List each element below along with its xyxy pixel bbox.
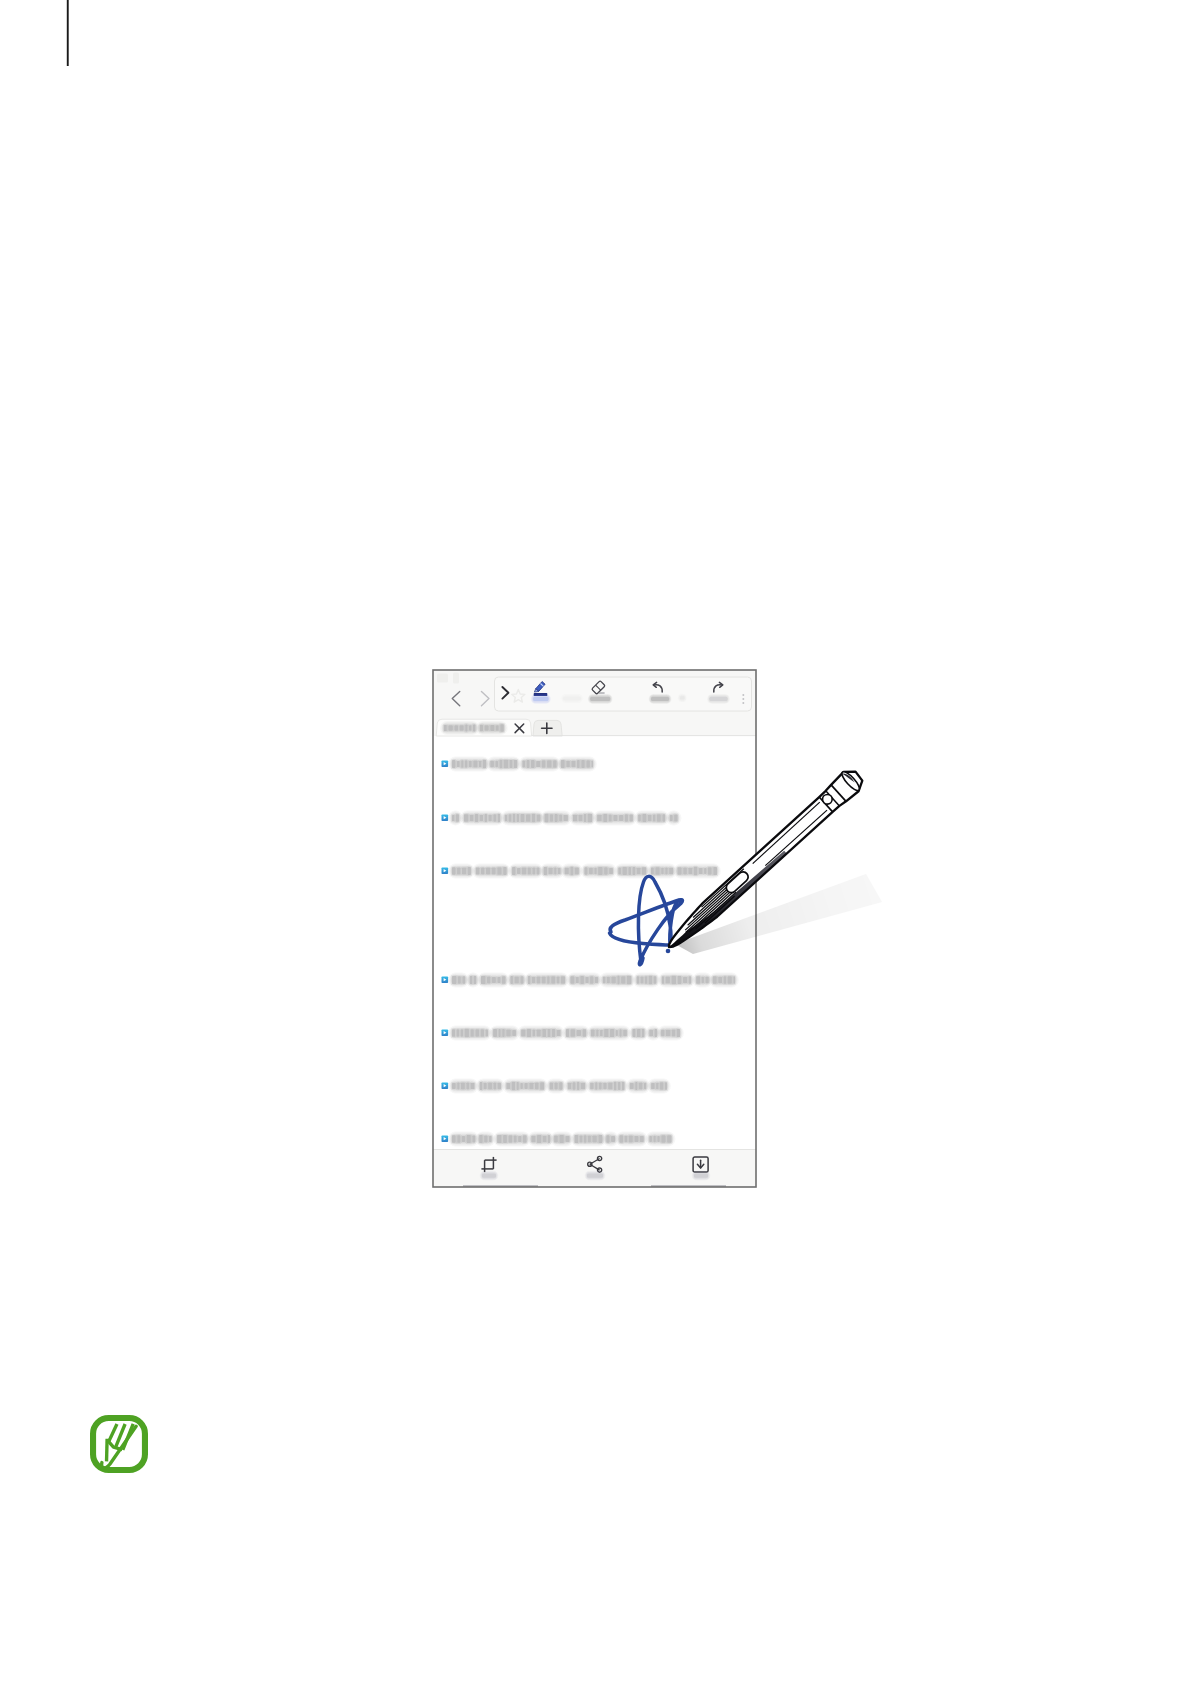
button[interactable]: Share	[578, 1157, 683, 1195]
button[interactable]: Crop	[473, 1157, 578, 1195]
button[interactable]: Note	[90, 1415, 148, 1473]
button[interactable]: Save	[683, 1157, 756, 1195]
